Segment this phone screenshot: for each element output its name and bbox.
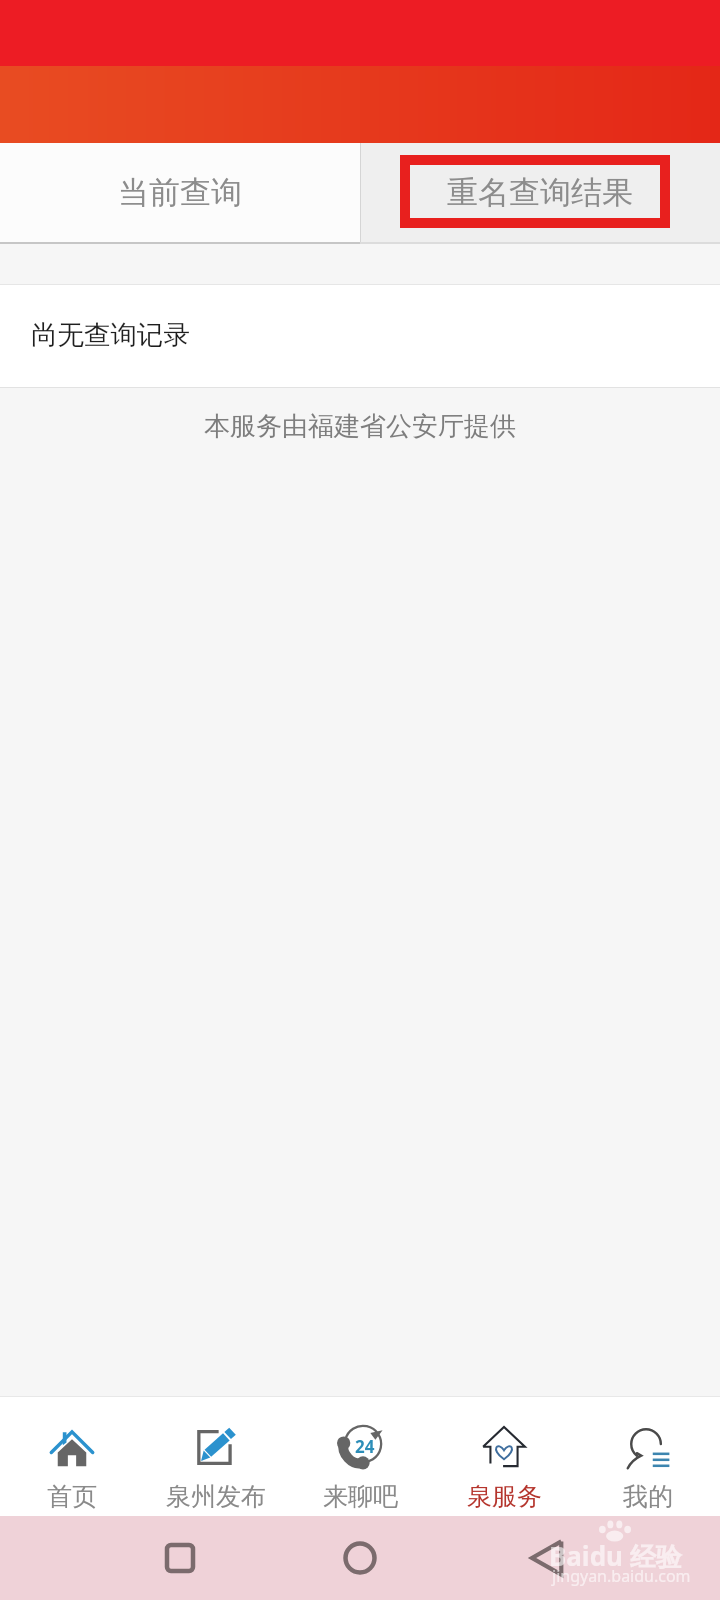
staticText: 本服务由福建省公安厅提供	[0, 410, 720, 443]
staticText: 泉州发布	[166, 1481, 266, 1512]
button[interactable]: Recent apps	[120, 1516, 240, 1600]
button[interactable]: 我的	[576, 1396, 720, 1516]
button[interactable]: 24	[288, 1396, 432, 1516]
staticText: 泉服务	[467, 1481, 542, 1512]
button[interactable]: Home	[300, 1516, 420, 1600]
button[interactable]: 当前查询	[0, 143, 360, 242]
button[interactable]: 重名查询结果	[360, 143, 720, 242]
staticText: jingyan.baidu.com	[552, 1565, 691, 1587]
staticText: 当前查询	[118, 173, 242, 212]
button[interactable]: 泉服务	[432, 1396, 576, 1516]
button[interactable]: Back	[487, 1516, 607, 1600]
button[interactable]: 首页	[0, 1396, 144, 1516]
staticText: 尚无查询记录	[31, 318, 190, 351]
staticText: 我的	[623, 1481, 673, 1512]
staticText: 来聊吧	[323, 1481, 398, 1512]
staticText: 重名查询结果	[447, 173, 633, 212]
staticText: Baidu 经验	[549, 1538, 682, 1574]
staticText: 24	[355, 1435, 375, 1458]
button[interactable]: 泉州发布	[144, 1396, 288, 1516]
staticText: 首页	[47, 1481, 97, 1512]
